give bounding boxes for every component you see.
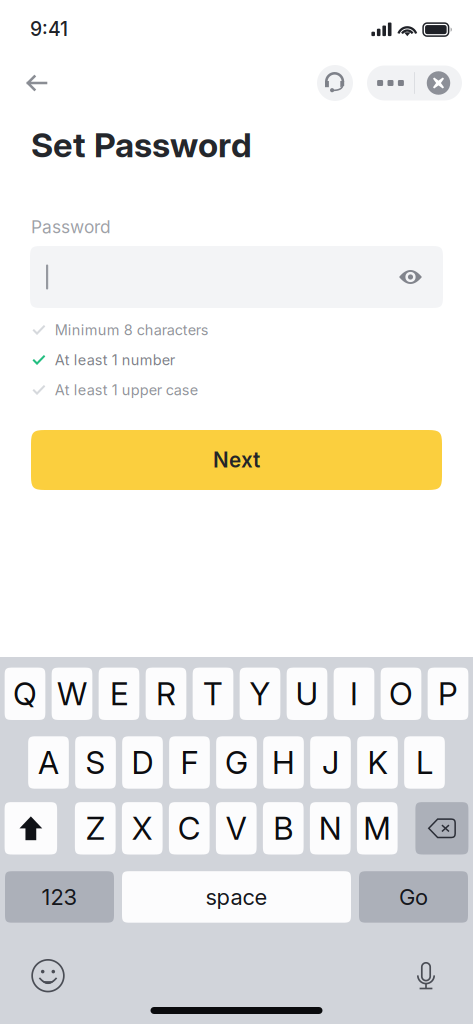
staticText: N [319, 809, 342, 847]
staticText: B [273, 809, 293, 847]
button[interactable]: D [122, 736, 163, 789]
button[interactable]: Z [75, 802, 116, 854]
button[interactable]: Q [5, 668, 45, 720]
staticText: P [438, 675, 458, 713]
staticText: Go [399, 884, 428, 910]
button[interactable]: Shift [5, 802, 57, 854]
button[interactable]: Back [16, 63, 56, 103]
staticText: Y [249, 675, 270, 713]
button[interactable]: T [193, 668, 233, 720]
button[interactable]: K [357, 736, 398, 789]
staticText: 123 [41, 884, 77, 910]
button[interactable]: E [99, 668, 139, 720]
button[interactable]: 123 [5, 871, 114, 923]
staticText: U [295, 675, 318, 713]
staticText: At least 1 upper case [55, 381, 198, 399]
button[interactable]: S [75, 736, 116, 789]
staticText: K [367, 743, 387, 781]
staticText: G [225, 743, 248, 781]
staticText: Minimum 8 characters [55, 321, 209, 339]
staticText: S [85, 743, 105, 781]
button[interactable]: N [310, 802, 351, 854]
button[interactable]: J [310, 736, 351, 789]
staticText: Set Password [31, 124, 252, 165]
button[interactable]: M [357, 802, 398, 854]
button[interactable]: G [216, 736, 257, 789]
staticText: Password [31, 216, 111, 237]
button[interactable]: P [428, 668, 468, 720]
staticText: H [272, 743, 295, 781]
staticText: F [180, 743, 198, 781]
button[interactable]: space [122, 871, 351, 923]
button[interactable]: A [28, 736, 69, 789]
button[interactable]: X [122, 802, 163, 854]
button[interactable]: V [216, 802, 257, 854]
button[interactable]: W [52, 668, 92, 720]
staticText: O [389, 675, 413, 713]
button[interactable]: Delete [415, 802, 468, 854]
button[interactable]: Y [240, 668, 280, 720]
button[interactable]: Close [415, 65, 462, 100]
button[interactable]: Next [31, 430, 442, 490]
staticText: At least 1 number [55, 351, 175, 369]
button[interactable]: R [146, 668, 186, 720]
button[interactable]: Dictation [404, 958, 448, 994]
staticText: A [38, 743, 59, 781]
staticText: W [57, 675, 87, 713]
button[interactable]: Show password [393, 260, 427, 294]
button[interactable]: H [263, 736, 304, 789]
button[interactable]: Emoji keyboard [26, 958, 70, 994]
button[interactable]: L [404, 736, 445, 789]
button[interactable]: I [334, 668, 374, 720]
staticText: I [350, 675, 358, 713]
button[interactable]: F [169, 736, 210, 789]
button[interactable]: Support [317, 65, 353, 101]
staticText: M [363, 809, 391, 847]
staticText: C [178, 809, 201, 847]
button[interactable]: C [169, 802, 210, 854]
staticText: Next [213, 447, 260, 472]
staticText: R [156, 675, 176, 713]
staticText: J [322, 743, 339, 781]
button[interactable]: More options [367, 65, 414, 100]
staticText: Z [86, 809, 105, 847]
staticText: Q [13, 675, 37, 713]
staticText: L [416, 743, 433, 781]
button[interactable]: B [263, 802, 304, 854]
button[interactable]: U [287, 668, 327, 720]
staticText: V [226, 809, 247, 847]
staticText: X [132, 809, 153, 847]
staticText: E [110, 675, 128, 713]
staticText: space [205, 884, 267, 910]
button[interactable]: O [381, 668, 421, 720]
staticText: D [131, 743, 153, 781]
staticText: 9:41 [30, 17, 68, 41]
button[interactable]: Go [359, 871, 468, 923]
staticText: T [203, 675, 223, 713]
